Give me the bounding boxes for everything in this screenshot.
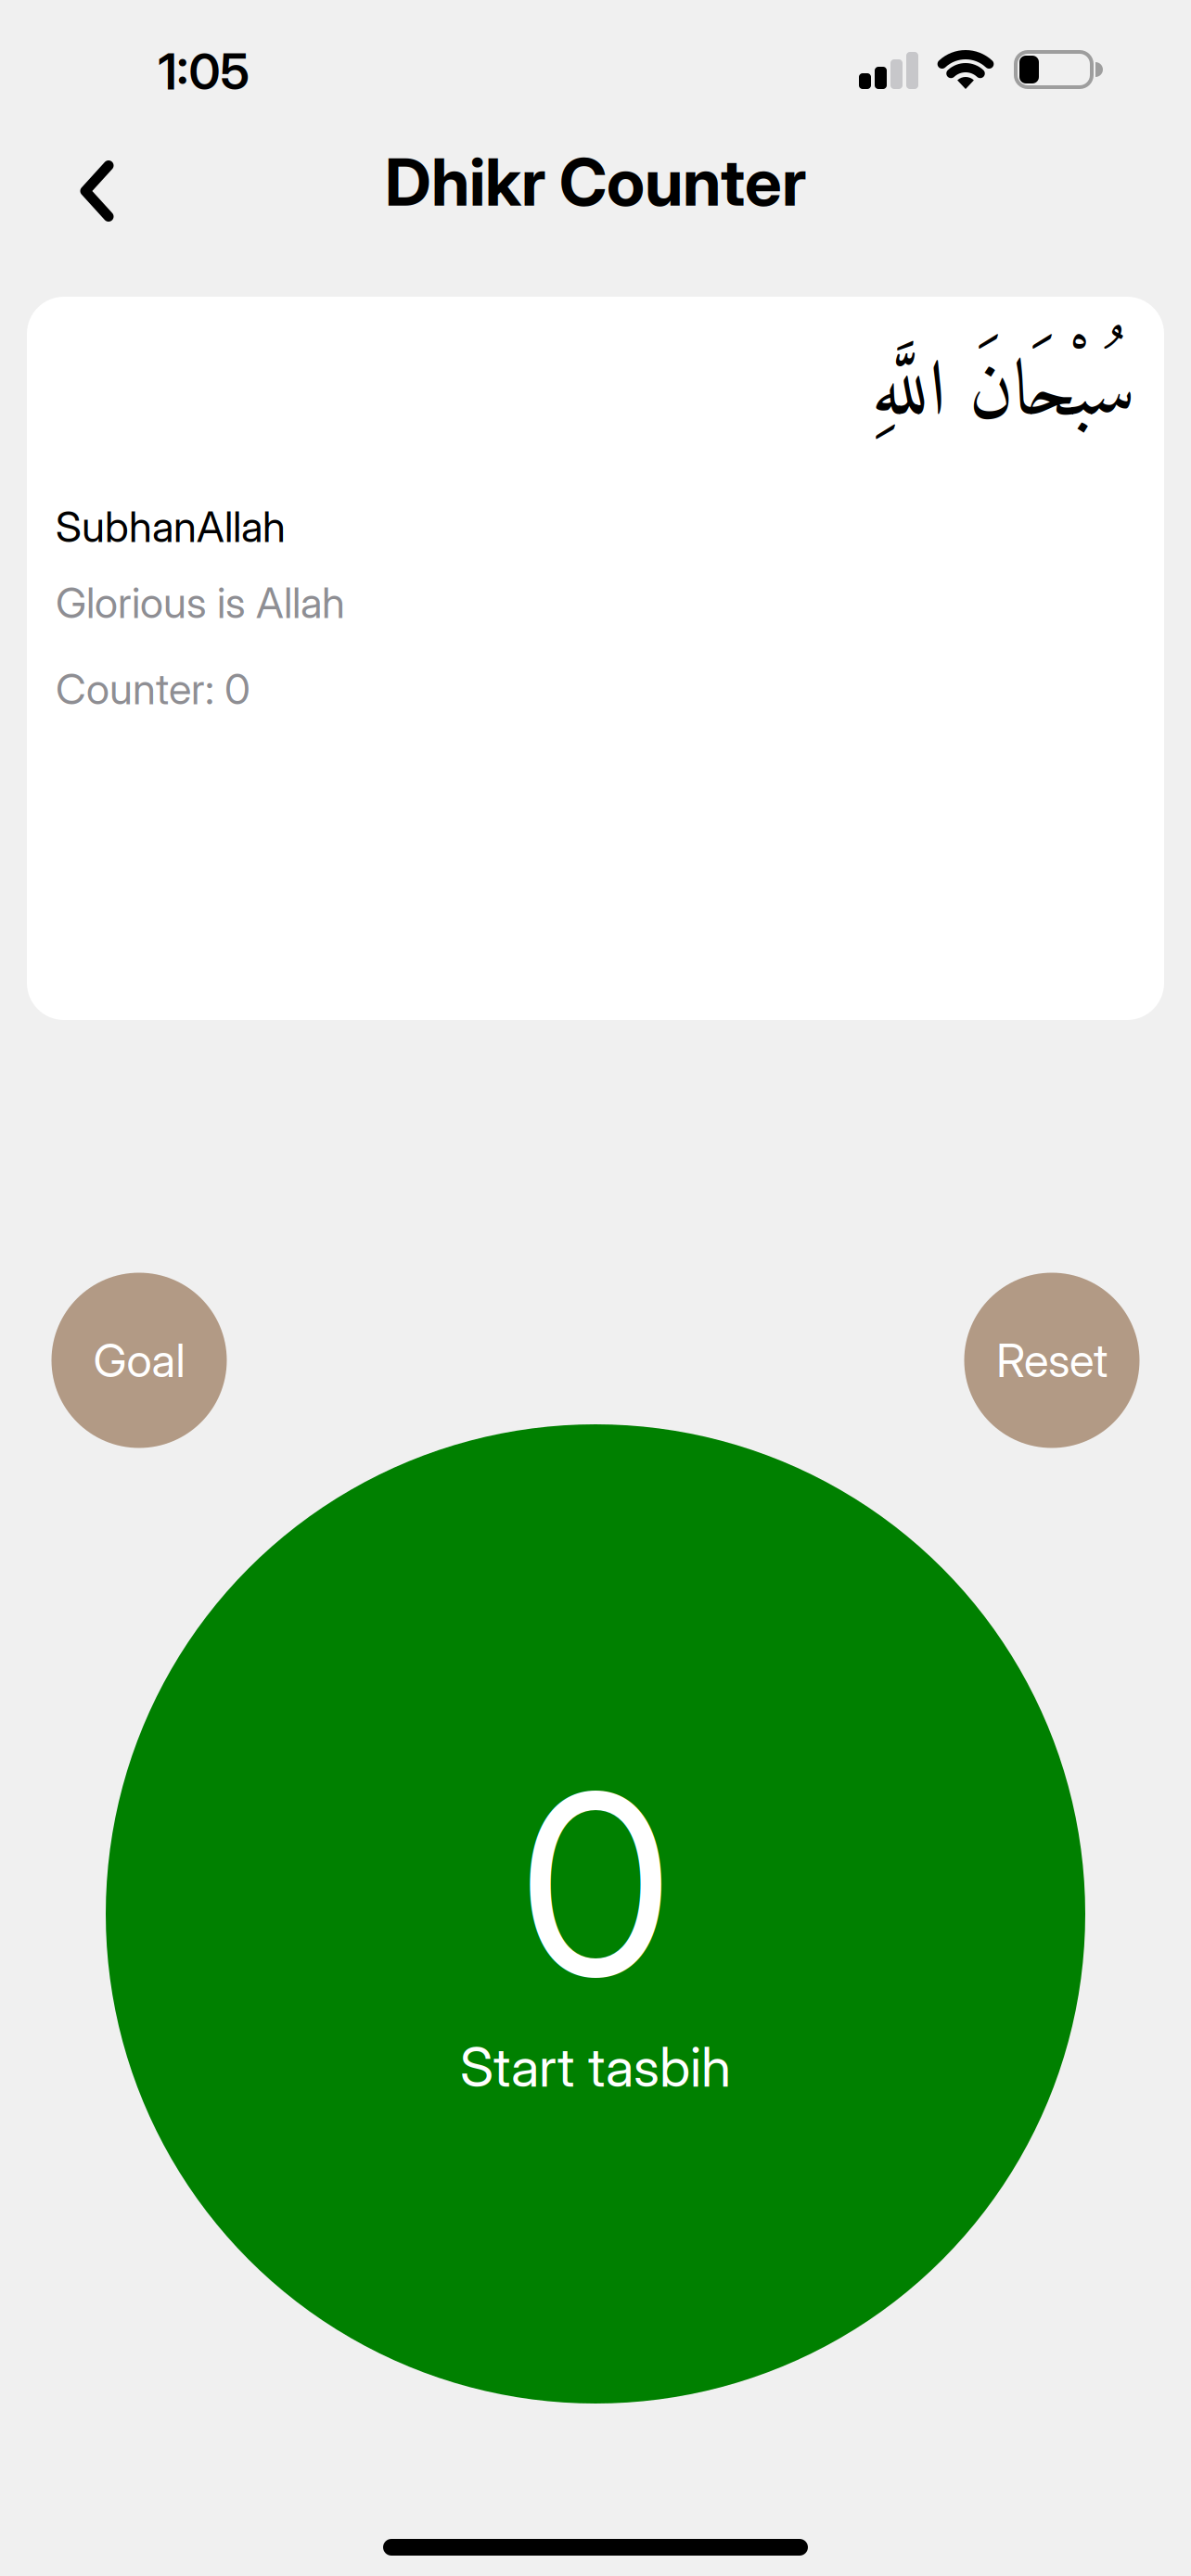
staticText: Goal bbox=[93, 1333, 185, 1388]
staticText: Dhikr Counter bbox=[385, 142, 806, 221]
staticText: Glorious is Allah bbox=[56, 577, 345, 628]
staticText: SubhanAllah bbox=[56, 501, 286, 552]
button[interactable]: 0 bbox=[106, 1424, 1085, 2404]
button[interactable]: Goal bbox=[51, 1273, 227, 1448]
staticText: Reset bbox=[996, 1333, 1108, 1388]
button[interactable]: Reset bbox=[964, 1273, 1140, 1448]
staticText: 0 bbox=[519, 1733, 672, 2035]
staticText: 1:05 bbox=[158, 41, 250, 101]
staticText: Counter: 0 bbox=[56, 664, 250, 714]
staticText: سُبْحَانَ اللَّهِ bbox=[871, 327, 1135, 464]
staticText: Start tasbih bbox=[460, 2034, 731, 2100]
button[interactable]: Back bbox=[67, 147, 127, 235]
